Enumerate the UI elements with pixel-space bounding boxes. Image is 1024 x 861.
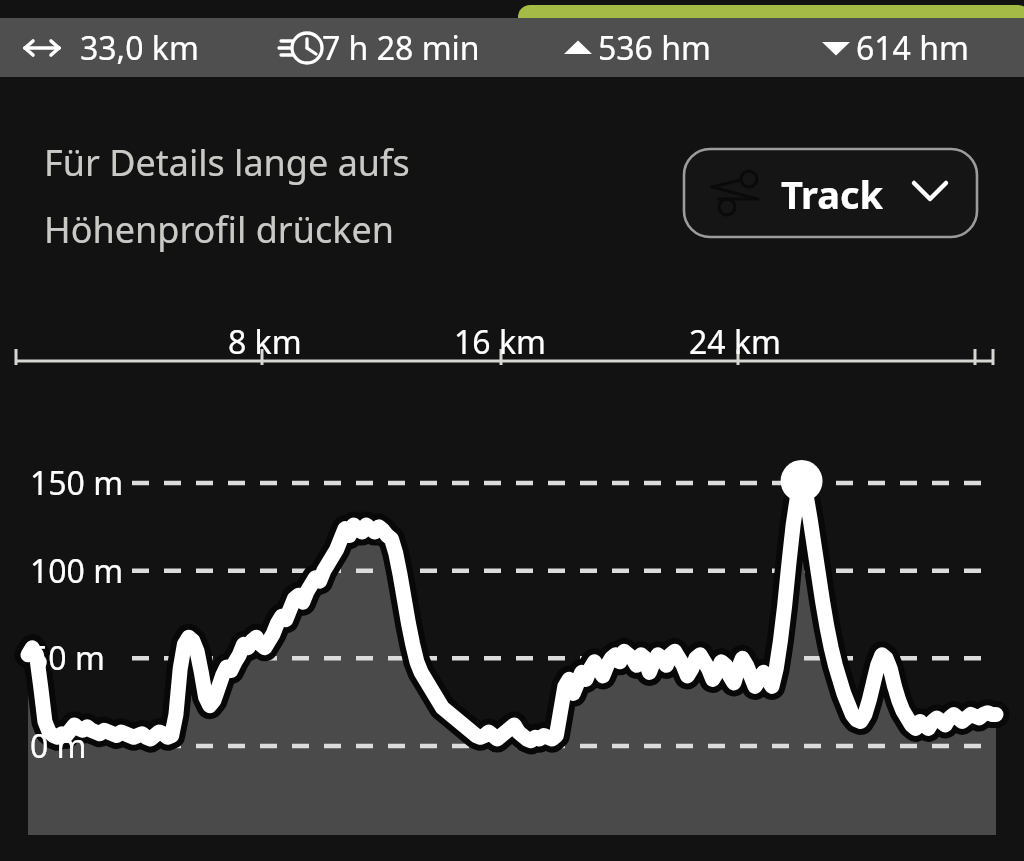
button[interactable]: Track — choose track display <box>684 149 977 237</box>
